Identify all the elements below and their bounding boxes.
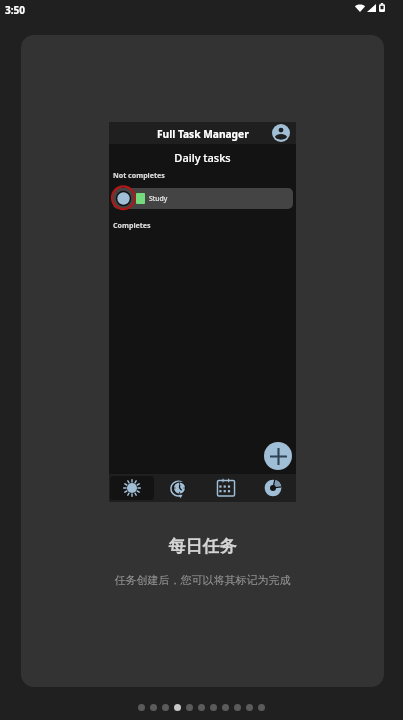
button[interactable]: Page 4 xyxy=(174,704,181,711)
button[interactable]: Page 7 xyxy=(210,704,217,711)
button[interactable]: Page 11 xyxy=(258,704,265,711)
button[interactable]: Page 10 xyxy=(246,704,253,711)
staticText: Not completes xyxy=(113,170,165,180)
button[interactable]: Account xyxy=(271,123,291,143)
staticText: 每日任务 xyxy=(21,536,384,557)
button[interactable]: History xyxy=(156,476,201,500)
staticText: Full Task Manager xyxy=(157,127,249,141)
staticText: Daily tasks xyxy=(109,150,296,165)
button[interactable]: Page 1 xyxy=(138,704,145,711)
button[interactable]: Page 3 xyxy=(162,704,169,711)
button[interactable]: Today xyxy=(110,476,154,500)
staticText: 3:50 xyxy=(5,3,25,17)
button[interactable]: Page 6 xyxy=(198,704,205,711)
button[interactable]: Page 8 xyxy=(222,704,229,711)
button[interactable]: Page 2 xyxy=(150,704,157,711)
staticText: Study xyxy=(149,194,168,203)
staticText: 任务创建后，您可以将其标记为完成 xyxy=(21,573,384,587)
button[interactable]: Add task xyxy=(264,442,292,470)
button[interactable]: Calendar xyxy=(203,476,248,500)
button[interactable]: Page 5 xyxy=(186,704,193,711)
button[interactable]: Page 9 xyxy=(234,704,241,711)
button[interactable]: Study xyxy=(113,188,293,209)
button[interactable]: Statistics xyxy=(250,476,295,500)
staticText: Completes xyxy=(113,220,151,230)
